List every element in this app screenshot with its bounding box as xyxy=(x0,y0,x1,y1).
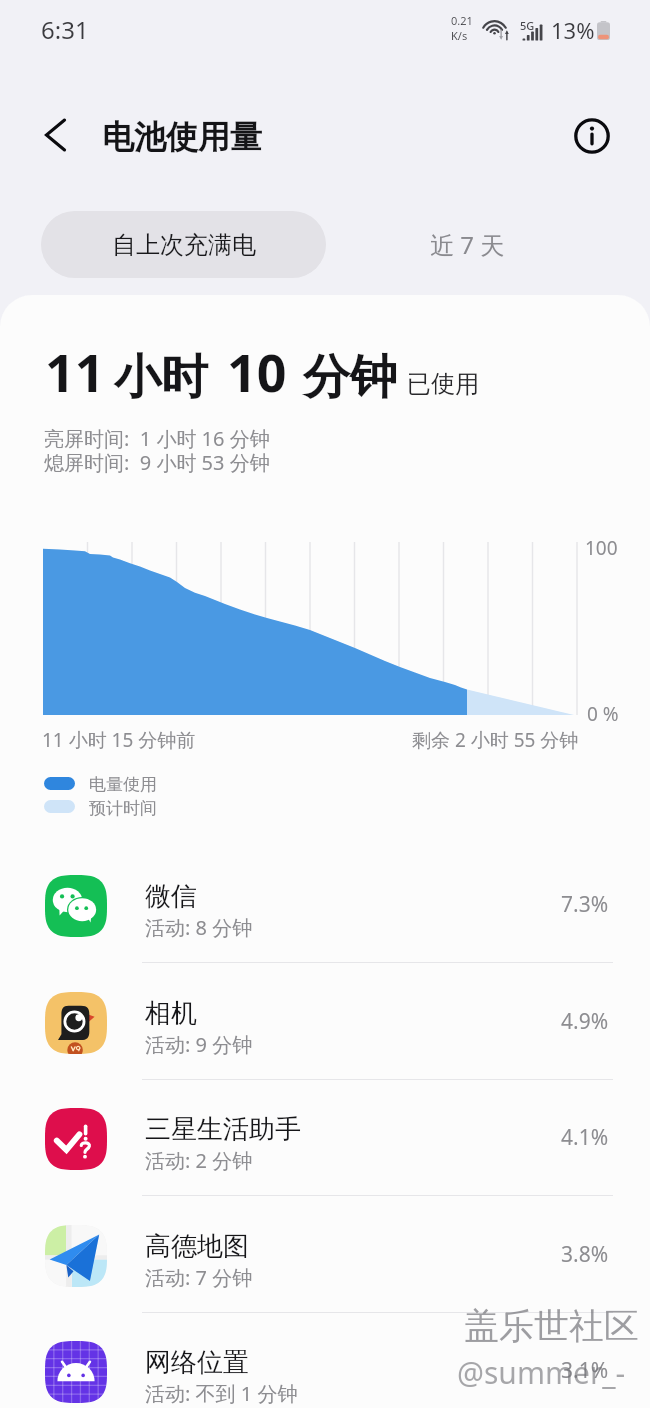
staticText: 小时 xyxy=(114,348,208,407)
staticText: 活动: 9 分钟 xyxy=(145,1031,253,1058)
staticText: 网络位置 xyxy=(145,1346,249,1379)
staticText: 微信 xyxy=(145,880,197,913)
staticText: 4.9% xyxy=(561,1007,609,1036)
staticText: 预计时间 xyxy=(89,798,157,819)
button[interactable]: 高德地图 xyxy=(0,1199,650,1316)
staticText: 已使用 xyxy=(407,369,479,399)
staticText: @summer_- xyxy=(457,1352,626,1393)
staticText: 0 % xyxy=(587,701,619,727)
staticText: 近 7 天 xyxy=(430,228,505,261)
staticText: 5G xyxy=(520,18,535,33)
staticText: 4.1% xyxy=(561,1123,609,1152)
staticText: 亮屏时间: 1 小时 16 分钟 xyxy=(44,425,270,452)
button[interactable]: 自上次充满电 xyxy=(41,211,326,278)
staticText: 活动: 7 分钟 xyxy=(145,1264,253,1291)
staticText: 自上次充满电 xyxy=(112,230,256,260)
staticText: 高德地图 xyxy=(145,1230,249,1263)
staticText: 3.8% xyxy=(561,1240,609,1269)
staticText: 3.1% xyxy=(561,1356,609,1385)
staticText: 7.3% xyxy=(561,890,609,919)
staticText: K/s xyxy=(451,28,468,43)
staticText: 剩余 2 小时 55 分钟 xyxy=(412,727,579,753)
staticText: 电量使用 xyxy=(89,774,157,795)
button[interactable]: 相机 xyxy=(0,966,650,1083)
button[interactable]: 网络位置 xyxy=(0,1315,650,1408)
staticText: 电池使用量 xyxy=(102,117,262,157)
button[interactable]: Back xyxy=(30,110,86,166)
button[interactable]: 三星生活助手 xyxy=(0,1082,650,1199)
staticText: 0.21 xyxy=(451,13,473,28)
staticText: 6:31 xyxy=(41,13,89,46)
staticText: 13% xyxy=(551,15,595,45)
button[interactable]: Information xyxy=(564,108,620,164)
staticText: 熄屏时间: 9 小时 53 分钟 xyxy=(44,449,270,476)
staticText: 100 xyxy=(585,535,618,561)
staticText: 活动: 2 分钟 xyxy=(145,1147,253,1174)
staticText: 三星生活助手 xyxy=(145,1113,301,1146)
staticText: 11 xyxy=(45,336,105,407)
staticText: 10 xyxy=(227,336,287,407)
staticText: 分钟 xyxy=(303,348,397,407)
staticText: 相机 xyxy=(145,997,197,1030)
staticText: 活动: 不到 1 分钟 xyxy=(145,1380,298,1407)
button[interactable]: 微信 xyxy=(0,849,650,966)
button[interactable]: 近 7 天 xyxy=(380,211,555,278)
staticText: 11 小时 15 分钟前 xyxy=(42,727,196,753)
staticText: 盖乐世社区 xyxy=(464,1304,639,1348)
staticText: 活动: 8 分钟 xyxy=(145,914,253,941)
